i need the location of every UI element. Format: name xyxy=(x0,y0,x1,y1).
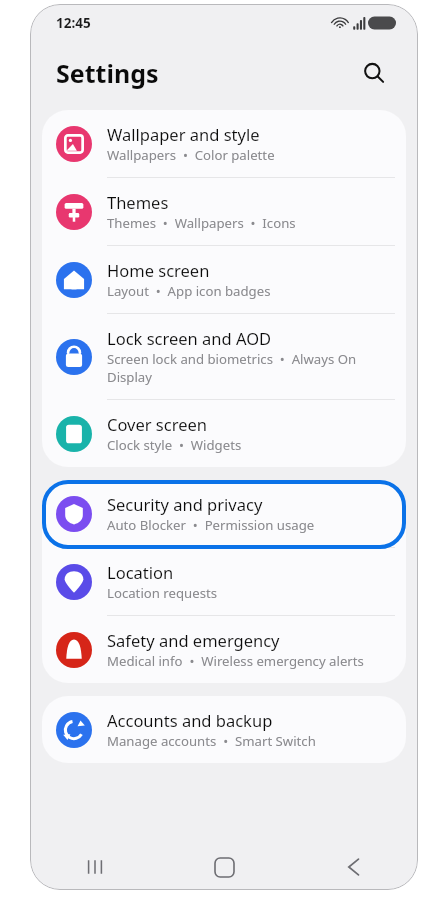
staticText: Accounts and backup xyxy=(107,709,273,731)
staticText: Themes • Wallpapers • Icons xyxy=(107,214,296,232)
staticText: Home screen xyxy=(107,259,210,281)
staticText: Manage accounts • Smart Switch xyxy=(107,732,316,750)
button[interactable]: Recent apps xyxy=(30,844,160,890)
button[interactable]: Back xyxy=(289,844,418,890)
staticText: Layout • App icon badges xyxy=(107,282,271,300)
staticText: Cover screen xyxy=(107,413,207,435)
staticText: Themes xyxy=(107,191,169,213)
button[interactable]: Lock screen and AOD xyxy=(42,314,406,400)
button[interactable]: Location xyxy=(42,548,406,616)
staticText: Location xyxy=(107,561,174,583)
staticText: Security and privacy xyxy=(107,493,263,515)
button[interactable]: Accounts and backup xyxy=(42,696,406,763)
button[interactable]: Safety and emergency xyxy=(42,616,406,683)
button[interactable]: Themes xyxy=(42,178,406,246)
button[interactable]: Search xyxy=(354,53,394,93)
button[interactable]: Home screen xyxy=(42,246,406,314)
staticText: Auto Blocker • Permission usage xyxy=(107,516,315,534)
staticText: Safety and emergency xyxy=(107,629,280,651)
button[interactable]: Home xyxy=(160,844,289,890)
staticText: Settings xyxy=(56,56,159,90)
staticText: Screen lock and biometrics • Always On D… xyxy=(107,350,388,386)
button[interactable]: Security and privacy xyxy=(42,480,406,548)
staticText: Lock screen and AOD xyxy=(107,327,272,349)
staticText: Medical info • Wireless emergency alerts xyxy=(107,652,364,670)
staticText: Location requests xyxy=(107,584,218,602)
button[interactable]: Wallpaper and style xyxy=(42,110,406,178)
staticText: Clock style • Widgets xyxy=(107,436,242,454)
staticText: Wallpapers • Color palette xyxy=(107,146,275,164)
button[interactable]: Cover screen xyxy=(42,400,406,467)
staticText: 12:45 xyxy=(56,14,91,32)
staticText: Wallpaper and style xyxy=(107,123,260,145)
